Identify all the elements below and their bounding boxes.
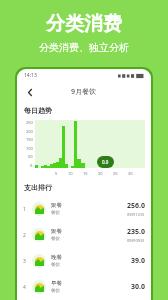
staticText: 250 [26, 120, 33, 125]
staticText: 10 [68, 171, 73, 176]
staticText: 餐饮 [51, 288, 60, 294]
button[interactable]: 4 [17, 274, 151, 300]
staticText: 餐饮 [51, 262, 60, 268]
staticText: 餐饮 [51, 210, 60, 216]
staticText: 聚餐 [51, 228, 62, 235]
staticText: 30 [128, 171, 133, 176]
staticText: 20 [98, 171, 103, 176]
staticText: 晚餐 [51, 254, 62, 261]
staticText: 3 [23, 258, 32, 265]
staticText: 14:13 [24, 72, 37, 79]
staticText: 9月餐饮 [71, 87, 97, 97]
staticText: 1 [23, 206, 32, 213]
staticText: 30.0 [131, 282, 145, 292]
staticText: 餐饮 [51, 236, 60, 242]
staticText: 分类消费、独立分析 [39, 41, 129, 54]
staticText: 150 [26, 137, 33, 142]
staticText: 15 [83, 171, 88, 176]
staticText: 分类消费 [46, 12, 122, 36]
staticText: 200 [26, 129, 33, 134]
staticText: 09月12日 [127, 212, 145, 217]
staticText: 0.0 [102, 159, 109, 165]
staticText: 100 [26, 146, 33, 151]
staticText: 早餐 [51, 280, 62, 287]
staticText: 50 [28, 154, 33, 159]
staticText: 聚餐 [51, 202, 62, 209]
button[interactable]: 3 [17, 248, 151, 274]
staticText: 每日趋势 [24, 106, 52, 115]
button[interactable]: Back [22, 84, 38, 100]
staticText: 235.0 [127, 227, 145, 237]
button[interactable]: 1 [17, 196, 151, 222]
staticText: 支出排行 [24, 183, 52, 192]
button[interactable]: 2 [17, 222, 151, 248]
staticText: 09月09日 [127, 238, 145, 243]
staticText: 39.0 [131, 256, 145, 266]
staticText: 25 [113, 171, 118, 176]
staticText: 5 [55, 171, 58, 176]
staticText: 0 [30, 163, 33, 168]
staticText: 2 [23, 232, 32, 239]
staticText: 256.0 [127, 201, 145, 211]
staticText: 4 [23, 284, 32, 291]
